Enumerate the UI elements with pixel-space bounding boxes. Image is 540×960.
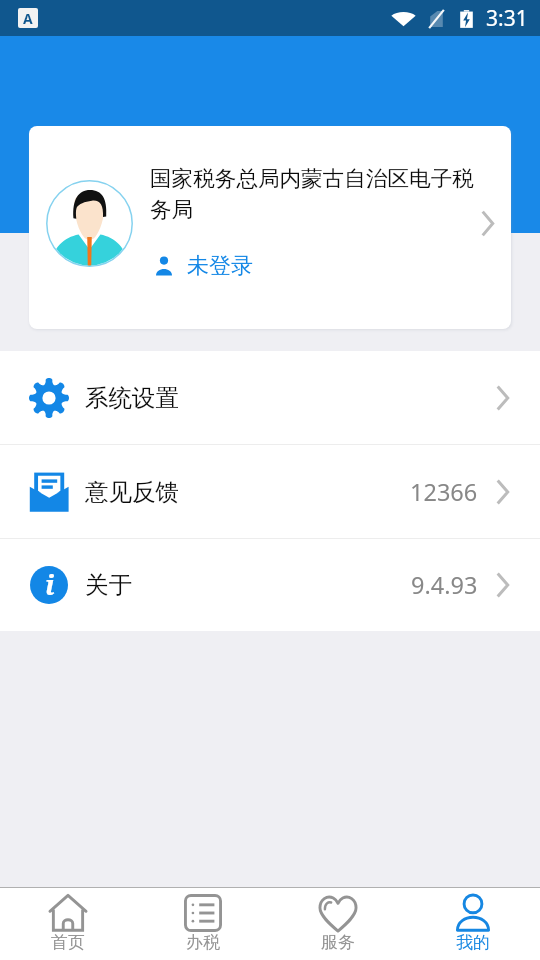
staticText: 9.4.93 [411, 569, 478, 601]
button[interactable]: 办税 [135, 888, 270, 960]
button[interactable]: 意见反馈 [0, 445, 540, 538]
button[interactable]: 国家税务总局内蒙古自治区电子税务局 [29, 126, 511, 329]
staticText: 未登录 [187, 252, 253, 280]
staticText: A [23, 9, 33, 28]
staticText: 3:31 [486, 4, 528, 33]
staticText: 办税 [186, 932, 220, 953]
staticText: 12366 [410, 476, 478, 508]
button[interactable]: i [0, 539, 540, 631]
staticText: 服务 [321, 932, 355, 953]
button[interactable]: 系统设置 [0, 351, 540, 444]
button[interactable]: 我的 [405, 888, 540, 960]
staticText: i [45, 566, 55, 603]
staticText: 我的 [456, 932, 490, 953]
button[interactable]: 服务 [270, 888, 405, 960]
staticText: 意见反馈 [85, 477, 179, 507]
staticText: 国家税务总局内蒙古自治区电子税务局 [150, 165, 480, 224]
staticText: 首页 [51, 932, 85, 953]
button[interactable]: 首页 [0, 888, 135, 960]
staticText: 系统设置 [85, 383, 179, 413]
staticText: 关于 [85, 570, 132, 600]
